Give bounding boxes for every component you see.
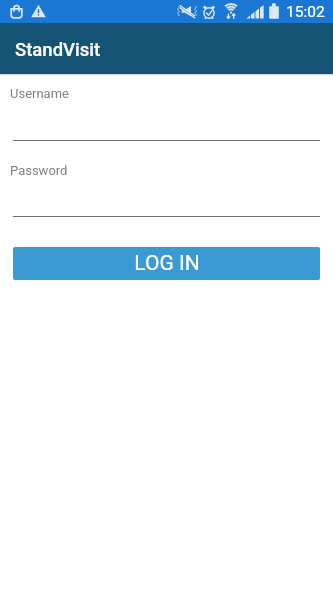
other: App download <box>10 4 23 19</box>
button[interactable]: Password <box>13 159 320 217</box>
other: Warning <box>31 4 46 18</box>
other: Wi-Fi <box>223 3 239 19</box>
other: Battery <box>269 3 279 19</box>
other: Alarm set <box>202 4 216 19</box>
button[interactable]: Username <box>13 82 320 141</box>
staticText: Username <box>10 86 69 101</box>
staticText: Password <box>10 163 68 178</box>
staticText: StandVisit <box>15 39 101 61</box>
staticText: 15:02 <box>286 3 325 21</box>
button[interactable]: LOG IN <box>13 247 320 280</box>
other: Ringer muted <box>176 4 198 18</box>
staticText: LOG IN <box>134 251 200 276</box>
other: Mobile signal <box>246 4 264 19</box>
